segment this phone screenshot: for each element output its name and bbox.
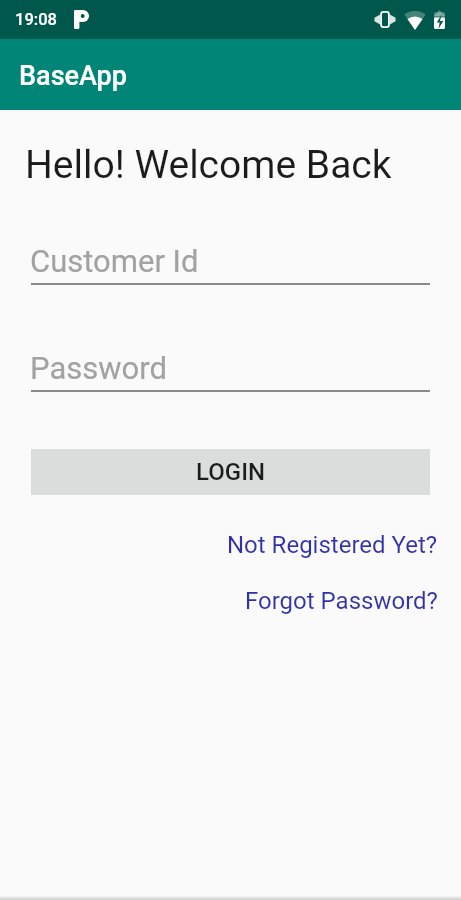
button[interactable]: Password: [31, 350, 430, 392]
staticText: Customer Id: [30, 243, 199, 279]
button[interactable]: Forgot Password?: [245, 587, 438, 615]
button[interactable]: Not Registered Yet?: [227, 531, 438, 559]
button[interactable]: Customer Id: [31, 243, 430, 285]
staticText: BaseApp: [19, 60, 127, 92]
staticText: LOGIN: [196, 458, 265, 486]
button[interactable]: LOGIN: [31, 449, 430, 495]
staticText: 19:08: [15, 10, 57, 29]
staticText: Password: [30, 350, 167, 386]
staticText: Hello! Welcome Back: [25, 142, 392, 188]
